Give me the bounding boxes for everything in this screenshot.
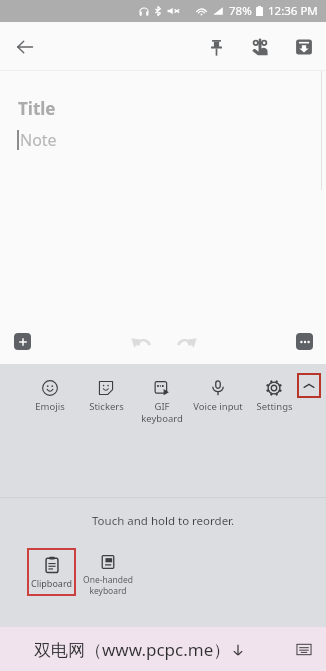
button[interactable]: More options xyxy=(288,325,320,357)
button[interactable]: Redo xyxy=(169,324,203,358)
staticText: Clipboard xyxy=(31,577,72,589)
button[interactable]: Voice input xyxy=(190,380,246,413)
staticText: GIF keyboard xyxy=(141,400,183,425)
button[interactable]: One-handed keyboard xyxy=(82,554,134,596)
button[interactable]: Save xyxy=(282,25,326,69)
staticText: 78% xyxy=(229,3,252,19)
staticText: Settings xyxy=(256,400,293,413)
button[interactable]: Pin xyxy=(194,25,238,69)
button[interactable]: Stickers xyxy=(78,380,134,413)
button[interactable]: Add xyxy=(6,325,38,357)
staticText: 12:36 PM xyxy=(268,3,318,19)
staticText: Touch and hold to reorder. xyxy=(92,513,235,529)
other: Keyboard xyxy=(296,643,312,656)
staticText: 双电网（www.pcpc.me） xyxy=(34,638,231,661)
button[interactable]: Undo xyxy=(124,324,158,358)
button[interactable]: GIF keyboard xyxy=(134,380,190,425)
button[interactable]: Handwriting xyxy=(238,25,282,69)
staticText: Title xyxy=(18,97,56,120)
button[interactable]: Back xyxy=(8,30,42,64)
button[interactable]: Clipboard xyxy=(27,548,76,596)
staticText: Emojis xyxy=(35,400,65,413)
button[interactable]: Settings xyxy=(246,380,302,413)
button[interactable]: Emojis xyxy=(22,380,78,413)
staticText: One-handed keyboard xyxy=(83,574,133,596)
staticText: Stickers xyxy=(89,400,124,413)
button[interactable]: Collapse keyboard xyxy=(297,373,321,398)
staticText: Note xyxy=(20,129,57,151)
staticText: Voice input xyxy=(193,400,243,413)
